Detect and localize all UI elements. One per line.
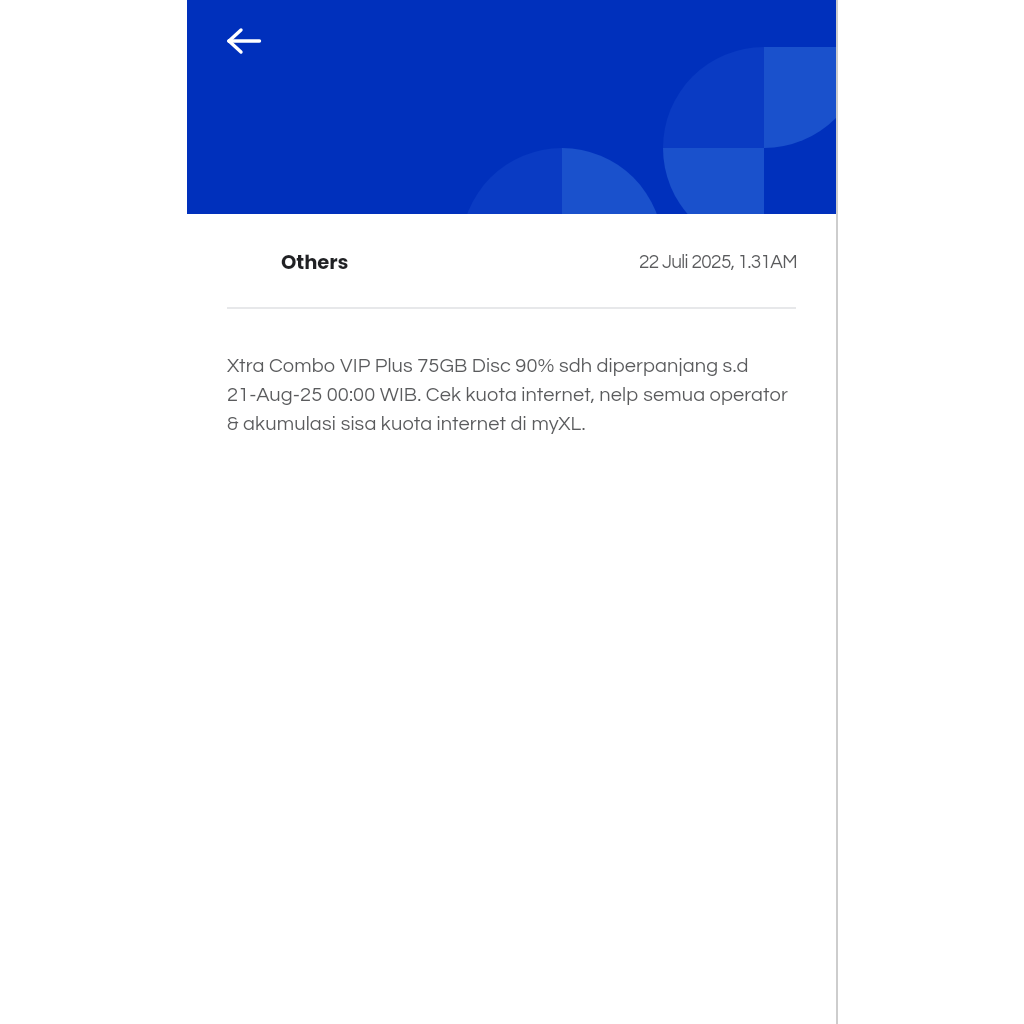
button[interactable]: Back	[215, 12, 273, 70]
staticText: 22 Juli 2025, 1.31AM	[639, 252, 797, 272]
staticText: Others	[281, 248, 349, 275]
staticText: Xtra Combo VIP Plus 75GB Disc 90% sdh di…	[227, 356, 788, 434]
